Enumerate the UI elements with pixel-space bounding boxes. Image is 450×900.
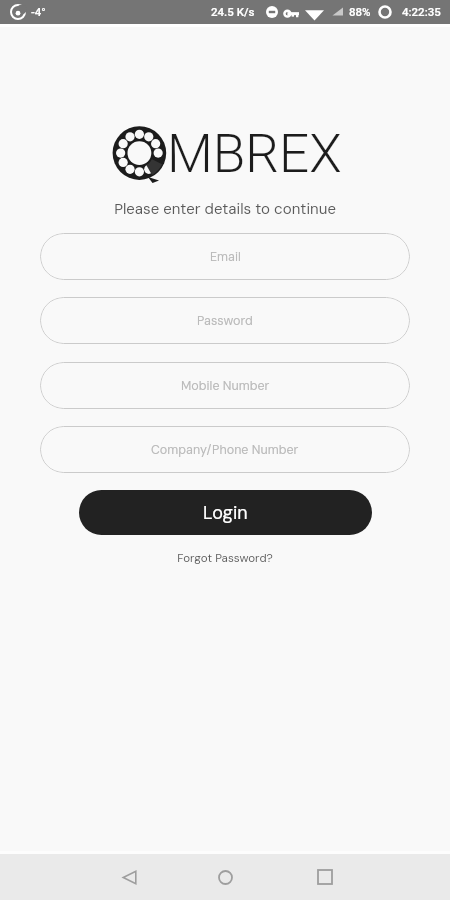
- staticText: 4:22:35: [402, 5, 441, 18]
- button[interactable]: Recents: [310, 862, 340, 892]
- button[interactable]: Password: [40, 297, 410, 344]
- staticText: Login: [203, 501, 248, 524]
- button[interactable]: Forgot Password?: [0, 551, 450, 566]
- staticText: MBREX: [167, 123, 342, 185]
- staticText: 24.5 K/s: [211, 5, 255, 18]
- button[interactable]: Company/Phone Number: [40, 426, 410, 473]
- staticText: -4°: [31, 5, 46, 18]
- staticText: Password: [197, 313, 253, 329]
- staticText: Company/Phone Number: [151, 442, 299, 458]
- button[interactable]: Mobile Number: [40, 362, 410, 409]
- staticText: 88%: [349, 5, 371, 18]
- button[interactable]: Login: [79, 490, 372, 535]
- button[interactable]: Back: [114, 862, 144, 892]
- button[interactable]: Home: [210, 862, 240, 892]
- button[interactable]: Email: [40, 233, 410, 280]
- staticText: Email: [210, 249, 241, 265]
- staticText: Mobile Number: [181, 378, 270, 394]
- staticText: Please enter details to continue: [0, 199, 450, 219]
